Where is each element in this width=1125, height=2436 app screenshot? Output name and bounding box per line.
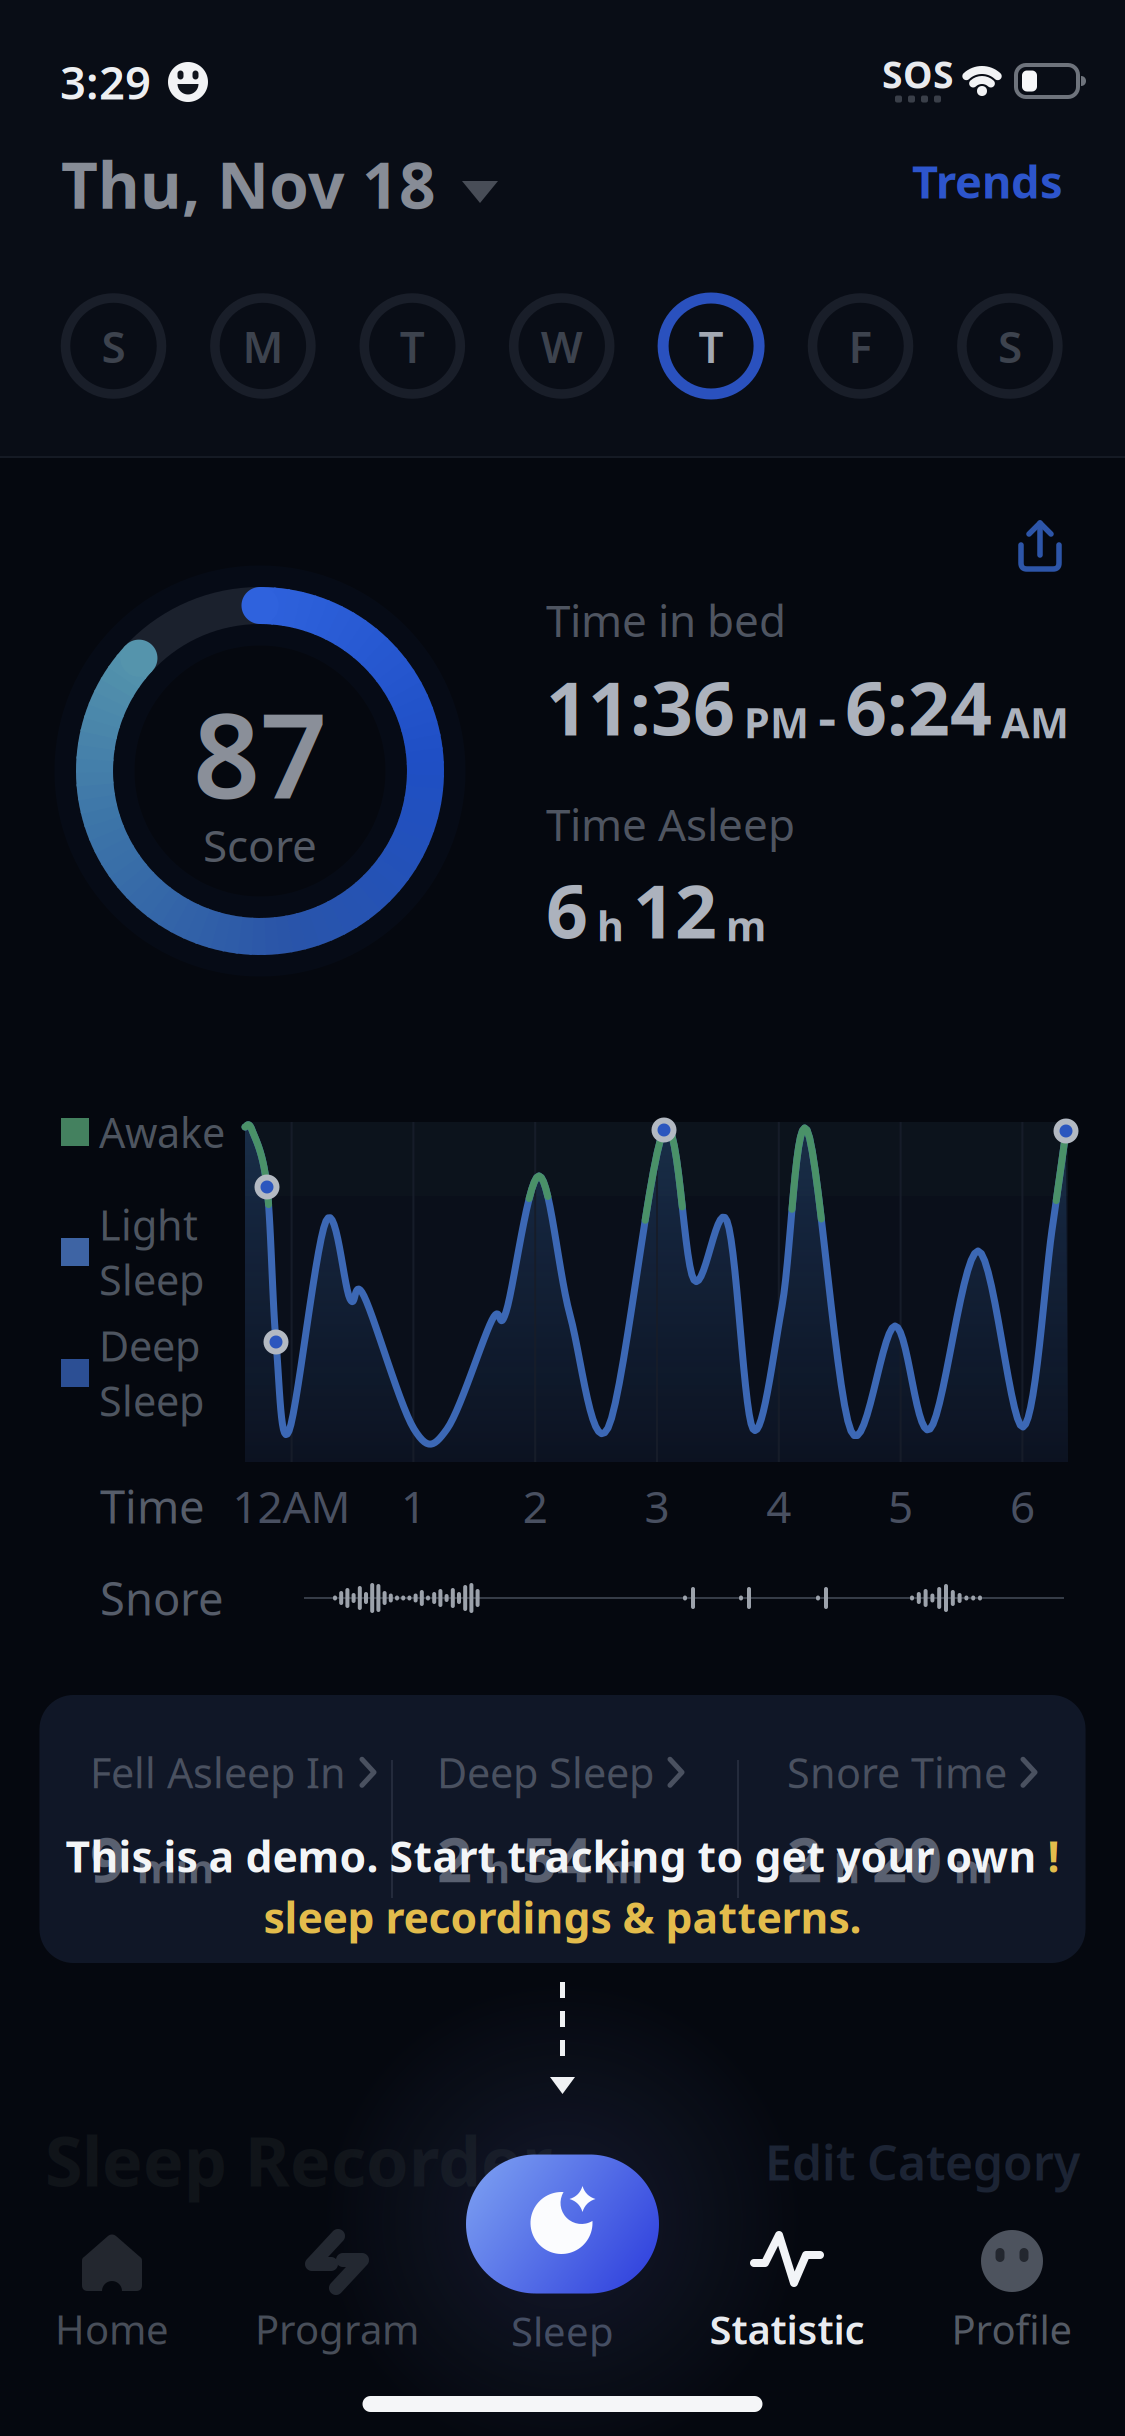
staticText: Statistic (709, 2302, 864, 2355)
button[interactable]: T (359, 293, 465, 399)
staticText: Time (100, 1476, 205, 1536)
staticText: AM (1001, 695, 1069, 750)
staticText: T (400, 317, 425, 375)
staticText: h (597, 898, 624, 953)
staticText: 2 (523, 1477, 548, 1535)
staticText: 12 (633, 861, 717, 959)
button[interactable]: Fell Asleep In (90, 1745, 376, 1899)
staticText: Profile (951, 2302, 1072, 2355)
staticText: Trends (912, 151, 1063, 211)
button[interactable]: Statistic (692, 2220, 882, 2372)
staticText: Sleep (511, 2304, 614, 2357)
staticText: S (998, 317, 1022, 375)
button[interactable]: Snore Time (787, 1745, 1037, 1899)
staticText: 6:24 (845, 658, 992, 756)
staticText: M (242, 317, 283, 375)
staticText: 5 (888, 1477, 913, 1535)
staticText: Sleep (99, 1373, 204, 1428)
staticText: This is a demo. Start tracking to get yo… (65, 1828, 1047, 1884)
staticText: 6 (1010, 1477, 1035, 1535)
staticText: 54 (522, 1818, 592, 1899)
staticText: Snore (100, 1568, 224, 1628)
staticText: Home (55, 2302, 169, 2355)
staticText: 3:29 (60, 52, 151, 112)
staticText: Deep Sleep (437, 1745, 654, 1800)
staticText: m (944, 1841, 993, 1894)
staticText: Sleep Recorder (45, 2115, 552, 2205)
staticText: 2 (437, 1818, 472, 1899)
staticText: 6 (546, 861, 588, 959)
staticText: sleep recordings & patterns. (263, 1889, 861, 1945)
staticText: 3 (644, 1477, 669, 1535)
staticText: Fell Asleep In (90, 1745, 346, 1800)
staticText: S (101, 317, 125, 375)
button[interactable]: W (509, 293, 615, 399)
button[interactable]: Deep Sleep (437, 1745, 684, 1899)
button[interactable]: F (807, 293, 913, 399)
staticText: 1 (401, 1477, 426, 1535)
button[interactable]: S (957, 293, 1063, 399)
staticText: 12AM (233, 1477, 351, 1535)
staticText: m (726, 898, 766, 953)
button[interactable]: Edit Category (765, 2130, 1080, 2194)
staticText: PM (744, 695, 809, 750)
staticText: Awake (99, 1105, 225, 1159)
staticText: 2 (787, 1818, 822, 1899)
staticText: Snore Time (787, 1745, 1007, 1800)
button[interactable]: S (60, 293, 166, 399)
staticText: 87 (193, 675, 327, 831)
staticText: Program (255, 2302, 419, 2355)
staticText: min (127, 1841, 214, 1894)
staticText: 4 (766, 1477, 791, 1535)
staticText: W (541, 317, 583, 375)
staticText: 11:36 (546, 658, 735, 756)
staticText: Score (203, 816, 317, 874)
staticText: SOS (882, 49, 954, 99)
staticText: F (848, 317, 872, 375)
staticText: ! (1047, 1828, 1059, 1884)
staticText: Thu, Nov 18 (61, 141, 436, 226)
button[interactable]: Trends (912, 151, 1063, 211)
staticText: h (824, 1841, 870, 1894)
button[interactable]: Sleep (466, 2154, 659, 2293)
staticText: Edit Category (765, 2130, 1080, 2194)
button[interactable]: Thu, Nov 18 (61, 141, 498, 226)
button[interactable]: Profile (917, 2220, 1107, 2372)
staticText: 9 (90, 1818, 125, 1899)
staticText: Sleep (99, 1252, 204, 1307)
button[interactable]: T (658, 293, 764, 399)
staticText: T (699, 317, 724, 375)
staticText: Time Asleep (546, 795, 795, 853)
button[interactable]: Program (242, 2220, 432, 2372)
staticText: Time in bed (546, 591, 786, 649)
button[interactable]: M (210, 293, 316, 399)
staticText: h (474, 1841, 520, 1894)
staticText: 20 (872, 1818, 942, 1899)
button[interactable]: Share (1019, 521, 1061, 571)
staticText: - (818, 678, 836, 754)
staticText: Light (99, 1197, 198, 1252)
staticText: Deep (99, 1318, 200, 1373)
staticText: m (594, 1841, 643, 1894)
button[interactable]: Home (17, 2220, 207, 2372)
